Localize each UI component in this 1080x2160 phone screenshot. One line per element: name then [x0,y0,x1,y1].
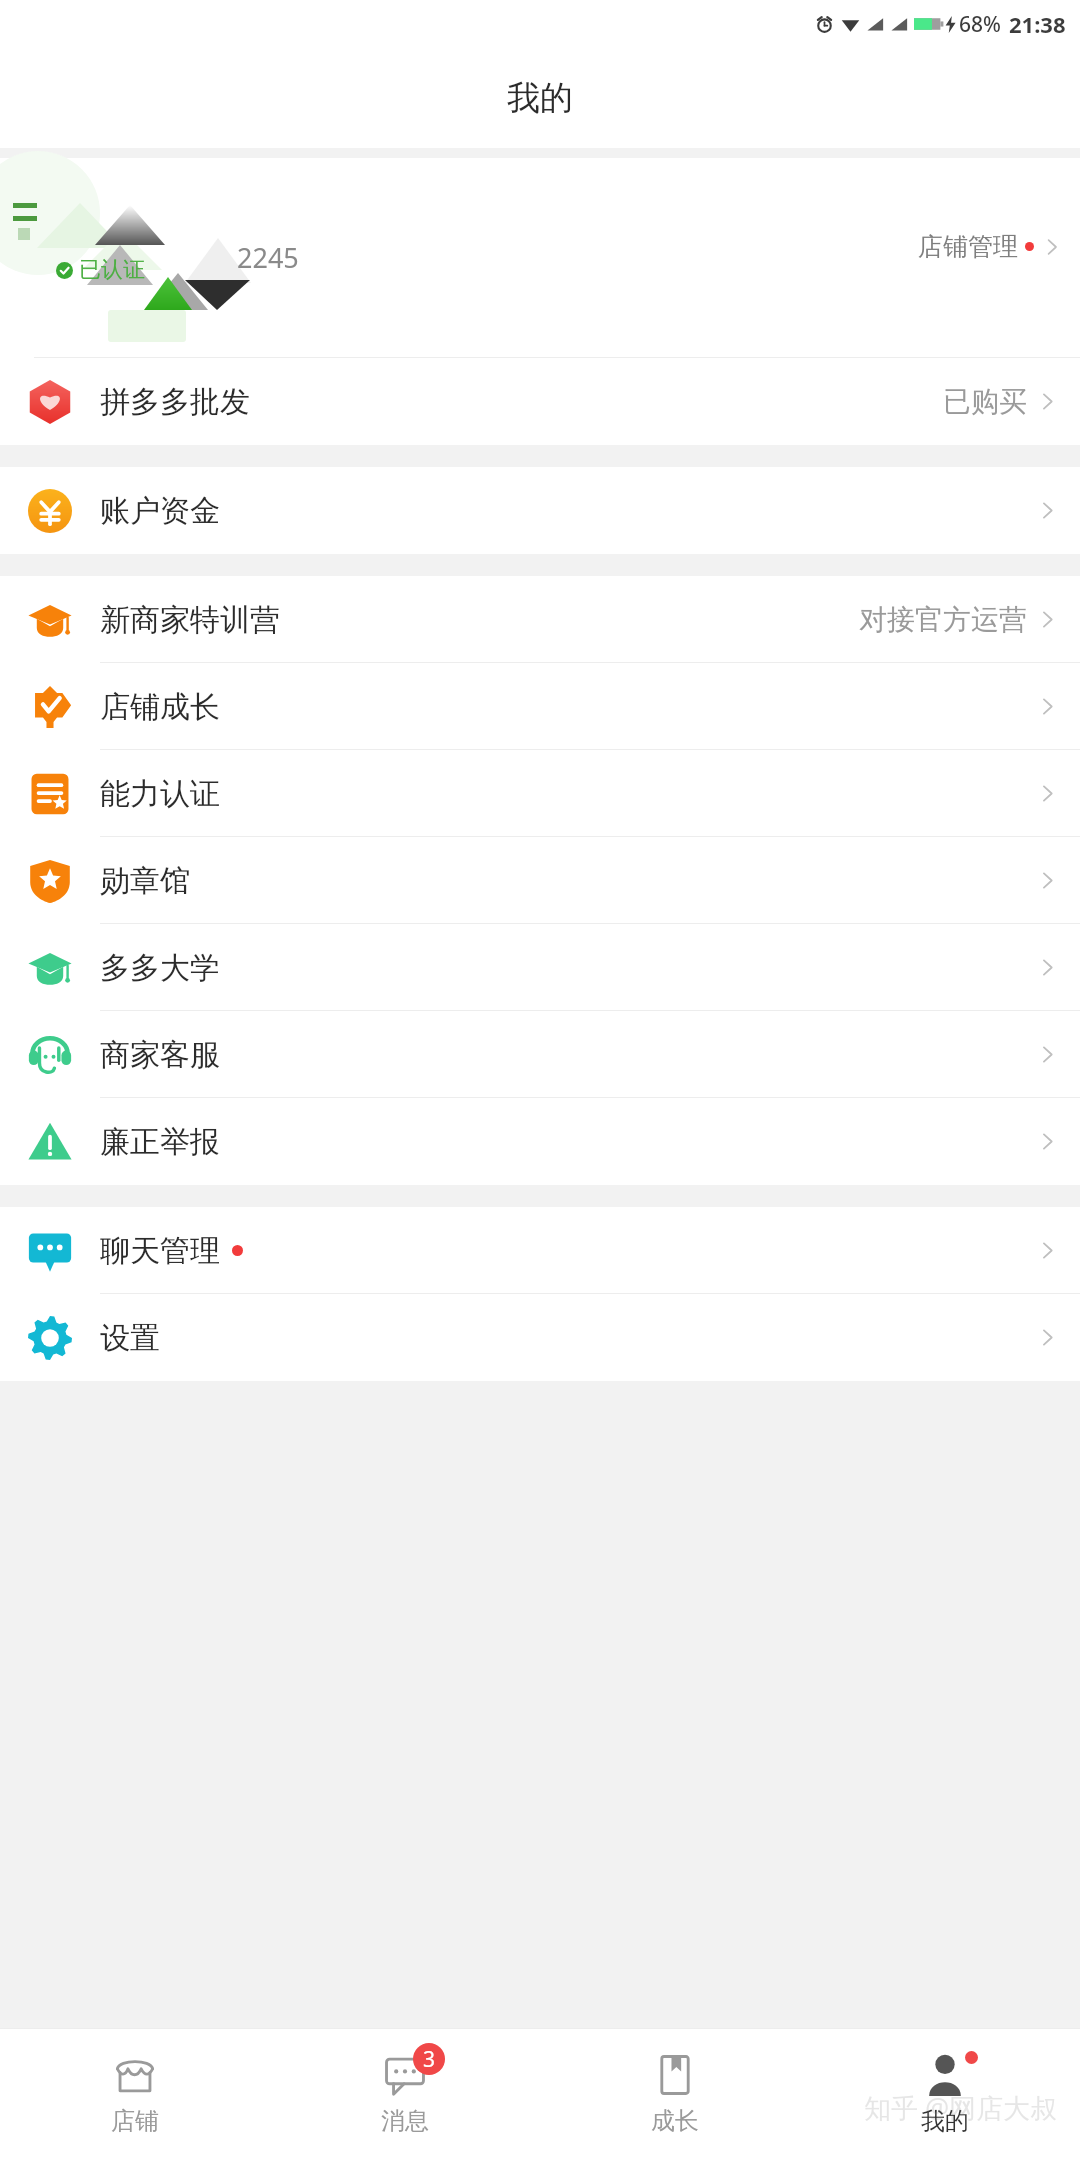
button[interactable]: 成长 [540,2028,810,2160]
staticText: 店铺成长 [100,688,220,726]
button[interactable]: 店铺管理 [900,223,1080,270]
staticText: 廉正举报 [100,1123,220,1161]
staticText: 21:38 [1009,9,1066,39]
staticText: 多多大学 [100,949,220,987]
staticText: 设置 [100,1319,160,1357]
staticText: 新商家特训营 [100,601,280,639]
staticText: 对接官方运营 [859,602,1027,637]
staticText: 勋章馆 [100,862,190,900]
staticText: 2245 [237,239,299,276]
staticText: 3 [423,2045,436,2074]
staticText: 能力认证 [100,775,220,813]
button[interactable]: 勋章馆 [0,837,1080,924]
staticText: 账户资金 [100,492,220,530]
staticText: 我的 [507,77,573,119]
staticText: 消息 [381,2106,429,2136]
button[interactable]: 店铺 [0,2028,270,2160]
staticText: 68% [959,10,1001,39]
button[interactable]: 店铺成长 [0,663,1080,750]
button[interactable]: 3 [270,2028,540,2160]
staticText: 店铺 [111,2106,159,2136]
button[interactable]: 廉正举报 [0,1098,1080,1185]
button[interactable]: 多多大学 [0,924,1080,1011]
staticText: 我的 [921,2106,969,2136]
button[interactable]: 能力认证 [0,750,1080,837]
staticText: 拼多多批发 [100,383,250,421]
staticText: 聊天管理 [100,1232,220,1270]
staticText: 商家客服 [100,1036,220,1074]
staticText: 知乎 @网店大叔 [864,2089,1058,2126]
staticText: 成长 [651,2106,699,2136]
staticText: 已认证 [79,256,145,284]
staticText: 店铺管理 [918,231,1018,262]
button[interactable]: 聊天管理 [0,1207,1080,1294]
button[interactable]: 账户资金 [0,467,1080,554]
button[interactable]: 设置 [0,1294,1080,1381]
button[interactable]: 拼多多批发 [0,358,1080,445]
button[interactable]: 新商家特训营 [0,576,1080,663]
button[interactable]: 商家客服 [0,1011,1080,1098]
button[interactable]: 我的 [810,2028,1080,2160]
staticText: 已购买 [943,384,1027,419]
